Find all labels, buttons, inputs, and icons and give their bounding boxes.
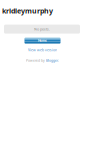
button[interactable]: Blogger. (46, 58, 59, 63)
staticText: Home (38, 38, 47, 43)
staticText: Powered by (26, 58, 46, 63)
staticText: kridleymurphy (2, 6, 53, 16)
button[interactable]: View web version (0, 48, 85, 52)
staticText: No posts. (34, 27, 50, 32)
button[interactable]: Home (24, 38, 60, 44)
staticText: View web version (28, 48, 57, 52)
staticText: Blogger. (46, 58, 59, 63)
